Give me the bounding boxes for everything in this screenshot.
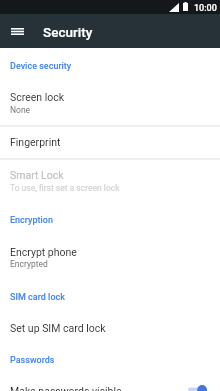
- button[interactable]: Screen lock: [0, 77, 220, 125]
- staticText: Screen lock: [10, 91, 65, 103]
- staticText: None: [10, 105, 31, 115]
- staticText: Smart Lock: [10, 169, 64, 181]
- staticText: To use, first set a screen lock: [10, 183, 120, 193]
- staticText: Encrypt phone: [10, 246, 77, 258]
- button[interactable]: Set up SIM card lock: [0, 309, 220, 342]
- button[interactable]: Make passwords visible, on: [188, 381, 207, 391]
- button[interactable]: Open navigation drawer: [4, 18, 30, 44]
- staticText: Encryption: [10, 215, 53, 226]
- staticText: Device security: [10, 61, 72, 72]
- staticText: Set up SIM card lock: [10, 322, 106, 334]
- button[interactable]: Smart Lock: [0, 158, 220, 203]
- staticText: Fingerprint: [10, 136, 61, 148]
- button[interactable]: Fingerprint: [0, 125, 220, 158]
- staticText: Encrypted: [10, 259, 48, 269]
- staticText: SIM card lock: [10, 292, 65, 303]
- staticText: Make passwords visible: [10, 385, 122, 391]
- staticText: Security: [43, 24, 93, 40]
- button[interactable]: Make passwords visible: [0, 372, 220, 391]
- staticText: Passwords: [10, 355, 55, 366]
- button[interactable]: Encrypt phone: [0, 232, 220, 278]
- staticText: 10:00: [194, 3, 217, 14]
